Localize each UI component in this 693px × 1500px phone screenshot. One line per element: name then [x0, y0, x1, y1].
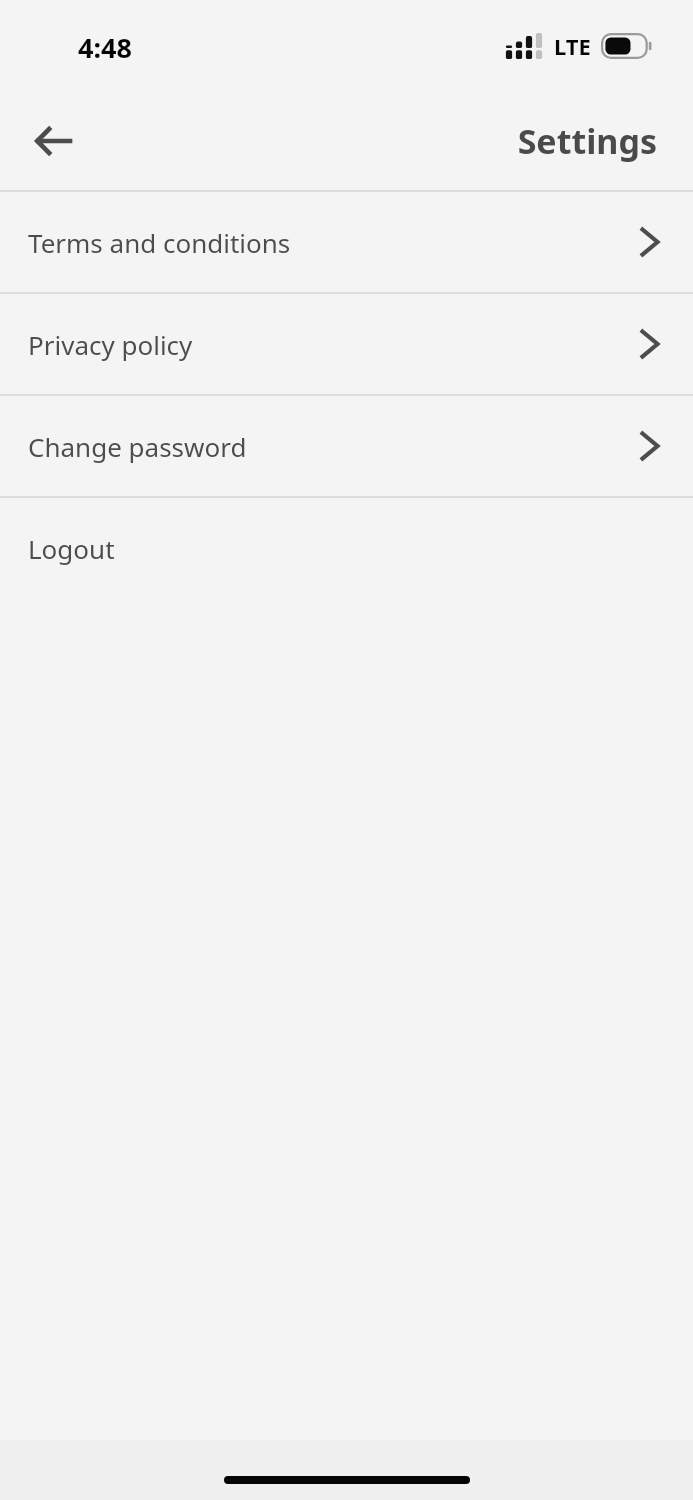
button[interactable]: Back: [20, 109, 84, 173]
button[interactable]: Logout: [0, 498, 693, 598]
button[interactable]: Privacy policy: [0, 294, 693, 394]
staticText: Settings: [517, 118, 657, 164]
staticText: LTE: [554, 31, 591, 61]
button[interactable]: Change password: [0, 396, 693, 496]
staticText: Terms and conditions: [28, 225, 291, 260]
staticText: Privacy policy: [28, 327, 193, 362]
staticText: Change password: [28, 429, 247, 464]
staticText: Logout: [28, 531, 115, 566]
button[interactable]: Terms and conditions: [0, 192, 693, 292]
staticText: 4:48: [78, 29, 132, 66]
